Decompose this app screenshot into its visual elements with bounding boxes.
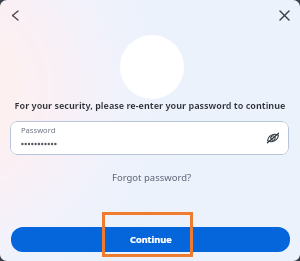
staticText: Password bbox=[21, 125, 56, 135]
button[interactable]: Back bbox=[3, 3, 27, 27]
button[interactable]: Close bbox=[272, 3, 296, 27]
button[interactable]: Password bbox=[10, 121, 289, 155]
staticText: For your security, please re-enter your … bbox=[10, 99, 290, 111]
staticText: Forgot password? bbox=[112, 171, 192, 184]
button[interactable]: Forgot password? bbox=[106, 167, 198, 188]
button[interactable]: Show password bbox=[262, 127, 284, 149]
button[interactable]: Continue bbox=[11, 227, 290, 252]
staticText: Continue bbox=[130, 233, 172, 246]
